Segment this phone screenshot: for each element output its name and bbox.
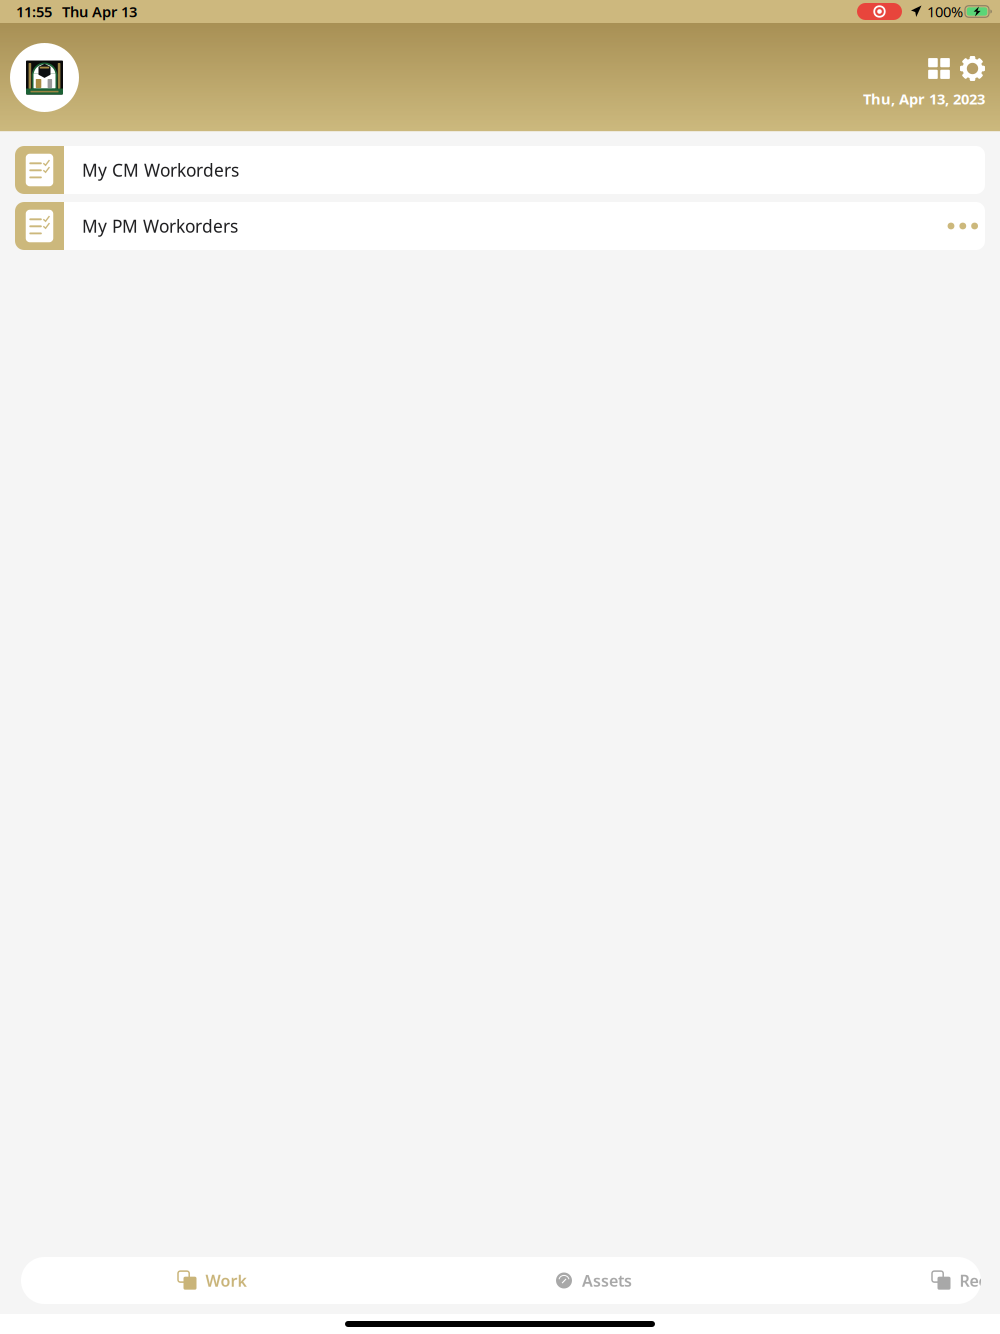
button[interactable]: Profile	[10, 43, 79, 112]
staticText: Work	[205, 1270, 246, 1291]
staticText: Assets	[582, 1270, 632, 1291]
button[interactable]: Settings	[960, 56, 985, 81]
button[interactable]: Modules	[928, 58, 950, 79]
staticText: My CM Workorders	[82, 158, 239, 181]
button[interactable]: Records	[932, 1257, 1000, 1304]
button[interactable]: Work	[178, 1257, 246, 1304]
staticText: Records	[959, 1270, 1000, 1291]
staticText: My PM Workorders	[82, 214, 238, 237]
staticText: 100%	[927, 2, 963, 21]
staticText: Thu Apr 13	[62, 2, 137, 21]
button[interactable]: My CM Workorders	[15, 146, 985, 194]
staticText: 11:55	[16, 2, 52, 21]
staticText: Thu, Apr 13, 2023	[863, 89, 985, 108]
button[interactable]: Assets	[555, 1257, 632, 1304]
button[interactable]: My PM Workorders	[15, 202, 985, 250]
